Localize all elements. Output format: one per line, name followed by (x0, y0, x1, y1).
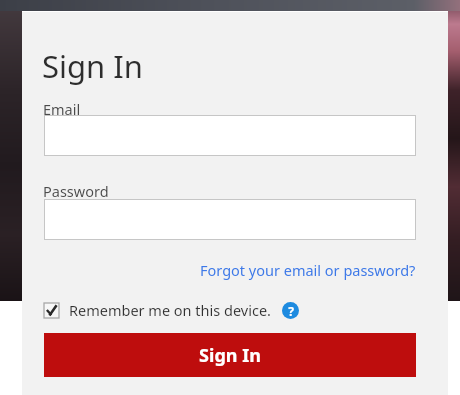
staticText: Sign In (199, 343, 261, 368)
staticText: Password (43, 181, 109, 201)
staticText: ? (288, 303, 294, 319)
button[interactable]: Sign In (44, 333, 416, 377)
button[interactable]: Help (282, 302, 299, 319)
staticText: Remember me on this device. (69, 300, 271, 320)
staticText: Email (43, 99, 81, 119)
staticText: Sign In (42, 45, 143, 87)
button[interactable] (44, 115, 416, 156)
button[interactable]: Forgot your email or password? (200, 260, 416, 280)
button[interactable] (44, 199, 416, 240)
button[interactable]: Remember me on this device. (44, 298, 299, 322)
staticText: Forgot your email or password? (200, 260, 416, 280)
